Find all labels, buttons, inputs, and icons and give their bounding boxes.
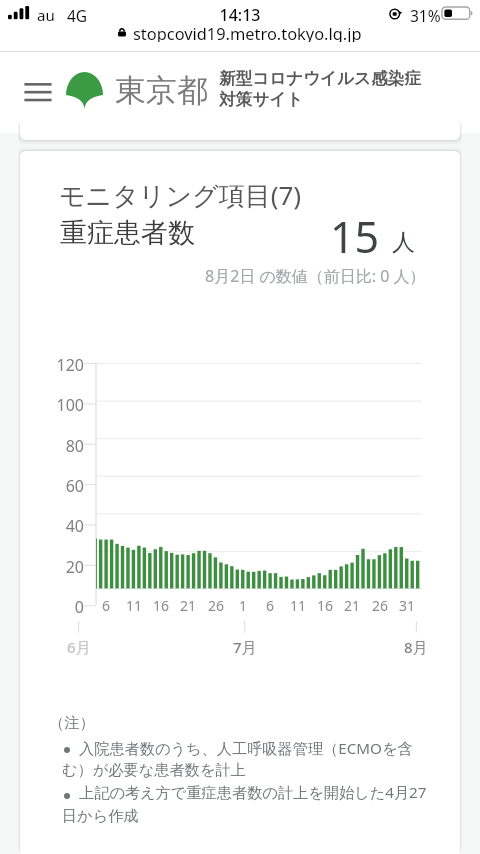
staticText: 新型コロナウイルス感染症 対策サイト bbox=[219, 68, 421, 110]
staticText: 4G bbox=[67, 5, 88, 26]
button[interactable]: Menu bbox=[21, 78, 55, 106]
staticText: 人 bbox=[392, 228, 415, 257]
staticText: 20 bbox=[34, 556, 84, 578]
staticText: 16 bbox=[313, 596, 337, 615]
staticText: 8月2日 の数値（前日比: 0 人） bbox=[205, 265, 426, 287]
staticText: 100 bbox=[34, 394, 84, 416]
staticText: 26 bbox=[204, 596, 228, 615]
staticText: 0 bbox=[34, 596, 84, 618]
staticText: 日から作成 bbox=[62, 806, 139, 825]
staticText: 8月 bbox=[404, 637, 428, 657]
staticText: む）が必要な患者数を計上 bbox=[62, 760, 246, 779]
staticText: （注） bbox=[49, 713, 95, 732]
staticText: 16 bbox=[149, 596, 173, 615]
staticText: 入院患者数のうち、人工呼吸器管理（ECMOを含 bbox=[79, 738, 413, 759]
staticText: 6 bbox=[94, 596, 118, 615]
staticText: 重症患者数 bbox=[60, 216, 195, 250]
staticText: au bbox=[37, 5, 55, 25]
staticText: 7月 bbox=[233, 637, 257, 657]
staticText: 31% bbox=[410, 5, 441, 26]
staticText: 80 bbox=[34, 435, 84, 457]
staticText: 21 bbox=[176, 596, 200, 615]
staticText: 1 bbox=[231, 596, 255, 615]
staticText: モニタリング項目(7) bbox=[59, 177, 302, 213]
staticText: 120 bbox=[34, 354, 84, 376]
staticText: 31 bbox=[395, 596, 419, 615]
staticText: 東京都 bbox=[115, 71, 208, 110]
staticText: 60 bbox=[34, 475, 84, 497]
staticText: stopcovid19.metro.tokyo.lg.jp bbox=[133, 22, 362, 42]
staticText: 40 bbox=[34, 515, 84, 537]
staticText: 11 bbox=[286, 596, 310, 615]
staticText: 11 bbox=[122, 596, 146, 615]
staticText: 上記の考え方で重症患者数の計上を開始した4月27 bbox=[79, 782, 427, 803]
button[interactable]: stopcovid19.metro.tokyo.lg.jp bbox=[0, 22, 480, 42]
staticText: 6月 bbox=[67, 637, 91, 657]
staticText: 14:13 bbox=[0, 4, 480, 26]
staticText: 15 bbox=[330, 207, 380, 266]
staticText: 26 bbox=[368, 596, 392, 615]
staticText: 6 bbox=[258, 596, 282, 615]
staticText: 21 bbox=[340, 596, 364, 615]
